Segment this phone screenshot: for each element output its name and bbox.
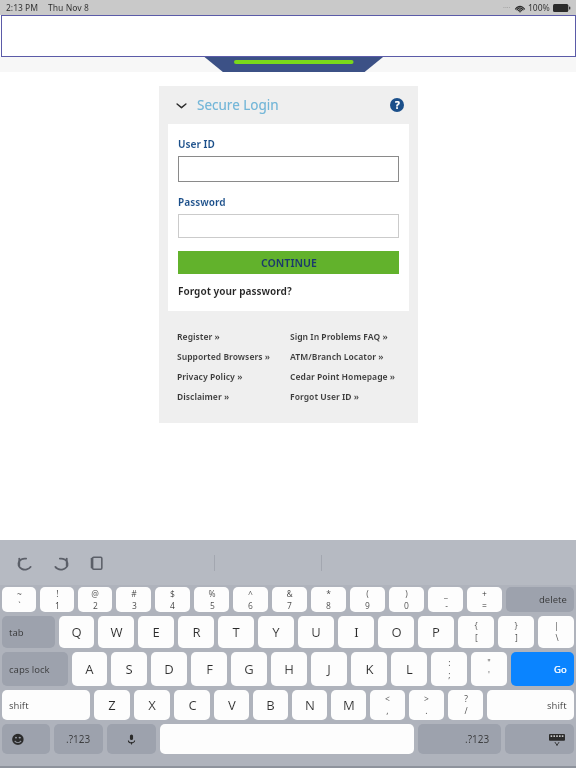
button[interactable]: Y — [258, 616, 294, 648]
button[interactable]: # — [116, 587, 151, 612]
button[interactable]: C — [174, 690, 210, 720]
button[interactable]: tab — [2, 616, 55, 648]
button[interactable]: ~ — [2, 587, 36, 612]
staticText: shift — [547, 699, 567, 712]
staticText: D — [164, 660, 174, 678]
button[interactable]: $ — [155, 587, 190, 612]
button[interactable]: V — [214, 690, 249, 720]
button[interactable]: @ — [78, 587, 112, 612]
button[interactable]: P — [418, 616, 454, 648]
button[interactable]: < — [370, 690, 405, 720]
button[interactable]: Register » — [177, 327, 220, 347]
button[interactable]: D — [151, 652, 187, 686]
button[interactable]: X — [134, 690, 170, 720]
button[interactable]: " — [471, 652, 507, 686]
button[interactable]: * — [311, 587, 346, 612]
button[interactable]: > — [409, 690, 444, 720]
button[interactable]: W — [98, 616, 134, 648]
button[interactable]: { — [458, 616, 494, 648]
button[interactable]: Help — [390, 98, 404, 112]
staticText: Forgot User ID » — [290, 391, 360, 403]
staticText: shift — [9, 699, 29, 712]
button[interactable]: Sign In Problems FAQ » — [290, 327, 388, 347]
button[interactable]: Keyboard key — [505, 724, 574, 754]
staticText: . — [425, 705, 428, 717]
button[interactable]: Paste — [86, 552, 108, 574]
button[interactable]: delete — [506, 587, 574, 612]
button[interactable]: B — [253, 690, 288, 720]
button[interactable]: O — [378, 616, 414, 648]
button[interactable]: Keyboard key — [418, 724, 501, 754]
button[interactable]: S — [111, 652, 147, 686]
button[interactable]: % — [194, 587, 229, 612]
staticText: > — [424, 693, 429, 705]
staticText: Privacy Policy » — [177, 371, 243, 383]
button[interactable]: _ — [428, 587, 463, 612]
staticText: ) — [405, 588, 408, 600]
button[interactable]: L — [391, 652, 427, 686]
button[interactable]: K — [351, 652, 387, 686]
staticText: ? — [464, 693, 468, 705]
button[interactable]: H — [271, 652, 307, 686]
button[interactable] — [178, 156, 399, 182]
button[interactable]: R — [178, 616, 214, 648]
button[interactable]: F — [191, 652, 227, 686]
button[interactable]: ? — [448, 690, 483, 720]
staticText: Go — [554, 663, 567, 676]
button[interactable]: CONTINUE — [178, 251, 399, 274]
button[interactable]: E — [138, 616, 174, 648]
button[interactable]: ) — [389, 587, 424, 612]
button[interactable]: Z — [94, 690, 130, 720]
button[interactable]: Cedar Point Homepage » — [290, 367, 396, 387]
staticText: Sign In Problems FAQ » — [290, 331, 388, 343]
staticText: 0 — [404, 600, 409, 612]
button[interactable]: M — [331, 690, 366, 720]
button[interactable]: shift — [487, 690, 574, 720]
button[interactable]: Keyboard key — [107, 724, 156, 754]
button[interactable]: Space — [160, 724, 414, 754]
button[interactable]: } — [498, 616, 534, 648]
button[interactable]: Go — [511, 652, 574, 686]
staticText: CONTINUE — [261, 256, 317, 270]
button[interactable]: ! — [40, 587, 74, 612]
button[interactable]: Secure Login — [159, 86, 418, 124]
button[interactable]: + — [467, 587, 502, 612]
button[interactable]: Forgot your password? — [178, 284, 292, 298]
button[interactable]: Redo — [50, 552, 72, 574]
button[interactable]: Keyboard key — [54, 724, 103, 754]
staticText: L — [406, 660, 413, 678]
button[interactable]: Disclaimer » — [177, 387, 230, 407]
button[interactable]: ( — [350, 587, 385, 612]
button[interactable]: U — [298, 616, 334, 648]
staticText: Disclaimer » — [177, 391, 230, 403]
button[interactable]: G — [231, 652, 267, 686]
button[interactable]: & — [272, 587, 307, 612]
button[interactable]: ATM/Branch Locator » — [290, 347, 384, 367]
staticText: ^ — [248, 588, 253, 600]
button[interactable]: : — [431, 652, 467, 686]
button[interactable]: caps lock — [2, 652, 68, 686]
button[interactable]: J — [311, 652, 347, 686]
staticText: .?123 — [465, 732, 490, 746]
button[interactable]: I — [338, 616, 374, 648]
staticText: ATM/Branch Locator » — [290, 351, 384, 363]
staticText: 6 — [248, 600, 253, 612]
button[interactable] — [178, 214, 399, 238]
button[interactable]: | — [538, 616, 574, 648]
staticText: O — [391, 623, 402, 641]
button[interactable]: T — [218, 616, 254, 648]
button[interactable]: shift — [2, 690, 90, 720]
button[interactable]: Keyboard key — [2, 724, 50, 754]
button[interactable]: N — [292, 690, 327, 720]
button[interactable]: Q — [59, 616, 94, 648]
staticText: F — [206, 660, 213, 678]
staticText: } — [514, 620, 518, 632]
button[interactable]: ^ — [233, 587, 268, 612]
button[interactable]: Forgot User ID » — [290, 387, 360, 407]
button[interactable]: Undo — [14, 552, 36, 574]
staticText: User ID — [178, 137, 215, 151]
staticText: " — [487, 657, 491, 669]
button[interactable]: Privacy Policy » — [177, 367, 243, 387]
button[interactable]: Supported Browsers » — [177, 347, 270, 367]
button[interactable]: A — [72, 652, 107, 686]
